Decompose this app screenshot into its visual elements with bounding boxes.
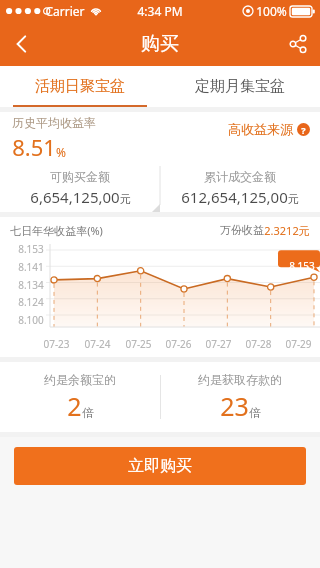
staticText: 倍 — [82, 405, 94, 420]
staticText: 07-24 — [84, 337, 111, 351]
staticText: 可购买金额 — [50, 169, 110, 184]
button[interactable]: 累计成交金额 — [160, 164, 320, 212]
button[interactable]: 可购买金额 — [0, 164, 160, 212]
staticText: 定期月集宝盆 — [195, 77, 285, 96]
staticText: 8.153 — [18, 242, 44, 256]
staticText: 07-29 — [285, 337, 312, 351]
button[interactable]: Back — [0, 22, 44, 66]
staticText: 8.153 — [289, 259, 315, 273]
staticText: 约是获取存款的 — [198, 372, 282, 387]
staticText: 元 — [120, 192, 131, 206]
staticText: 8.51 — [12, 132, 56, 162]
button[interactable]: 活期日聚宝盆 — [0, 66, 160, 107]
staticText: 累计成交金额 — [204, 169, 276, 184]
staticText: 8.141 — [18, 260, 44, 274]
staticText: 07-23 — [43, 337, 70, 351]
staticText: 07-26 — [165, 337, 192, 351]
button[interactable]: 高收益来源 — [228, 121, 310, 137]
staticText: 8.134 — [18, 278, 44, 292]
staticText: ? — [301, 124, 306, 136]
staticText: 4:34 PM — [137, 3, 183, 19]
staticText: 活期日聚宝盆 — [35, 77, 125, 96]
staticText: 约是余额宝的 — [44, 372, 116, 387]
staticText: 8.100 — [18, 313, 44, 327]
staticText: 七日年华收益率(%) — [10, 223, 103, 238]
staticText: 6,654,125,00 — [30, 187, 120, 207]
staticText: % — [56, 144, 66, 160]
button[interactable]: 定期月集宝盆 — [160, 66, 320, 107]
staticText: 万份收益 — [220, 223, 264, 237]
staticText: 23 — [220, 389, 249, 423]
staticText: 元 — [288, 192, 299, 206]
staticText: 倍 — [249, 405, 261, 420]
staticText: 07-27 — [205, 337, 232, 351]
staticText: 8.124 — [18, 295, 44, 309]
staticText: 立即购买 — [128, 456, 192, 476]
staticText: 2 — [67, 389, 82, 423]
staticText: 2.3212元 — [264, 223, 310, 238]
staticText: 07-25 — [125, 337, 152, 351]
staticText: 购买 — [141, 32, 179, 56]
staticText: Carrier — [45, 3, 85, 19]
staticText: 历史平均收益率 — [12, 115, 96, 130]
button[interactable]: Share — [276, 22, 320, 66]
staticText: 612,654,125,00 — [181, 187, 288, 207]
staticText: 07-28 — [245, 337, 272, 351]
button[interactable]: 立即购买 — [14, 447, 306, 485]
staticText: 100% — [256, 3, 287, 19]
staticText: 高收益来源 — [228, 121, 293, 137]
button[interactable]: 约是余额宝的 — [0, 362, 160, 432]
button[interactable]: 约是获取存款的 — [160, 362, 320, 432]
